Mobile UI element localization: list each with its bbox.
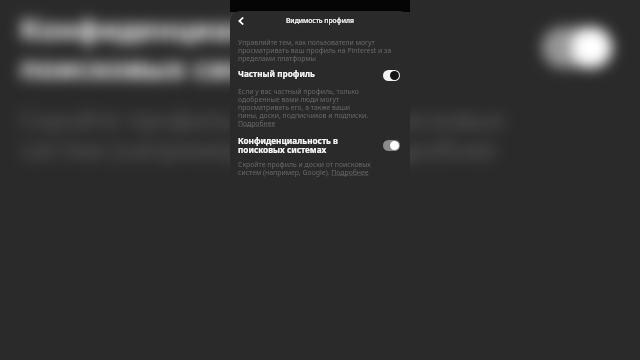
staticText: поисковых системах bbox=[20, 48, 333, 87]
staticText: систем (например, Google). Подробнее bbox=[20, 132, 497, 166]
button[interactable]: Back bbox=[233, 13, 249, 29]
staticText: Скройте профиль и доски от поисковых сис… bbox=[238, 160, 372, 177]
button[interactable]: Private profile toggle bbox=[383, 70, 400, 81]
button[interactable]: Частный профиль bbox=[230, 64, 410, 82]
staticText: Скройте профиль и доски от поисковых bbox=[20, 102, 505, 136]
staticText: Конфиденциальность в поисковых системах bbox=[238, 135, 366, 156]
button[interactable]: Конфиденциальность в поисковых системах bbox=[230, 132, 410, 158]
staticText: Частный профиль bbox=[238, 68, 315, 79]
staticText: Конфиденциальность в bbox=[20, 9, 374, 48]
button[interactable]: Search privacy toggle bbox=[383, 140, 400, 151]
staticText: Если у вас частный профиль, только одобр… bbox=[238, 87, 370, 128]
staticText: Управляйте тем, как пользователи могут п… bbox=[238, 38, 396, 63]
staticText: Видимость профиля bbox=[286, 16, 354, 25]
